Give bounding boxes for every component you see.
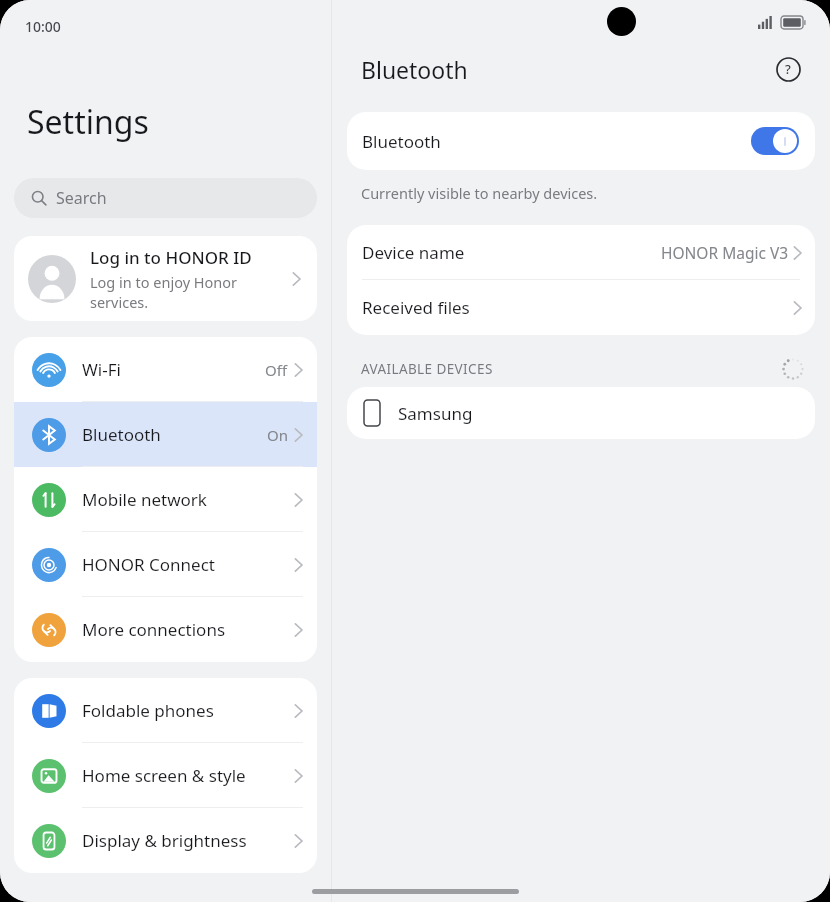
staticText: 10:00 [25, 17, 61, 36]
staticText: Currently visible to nearby devices. [361, 183, 598, 203]
staticText: Settings [27, 100, 149, 144]
staticText: Foldable phones [82, 699, 294, 722]
staticText: AVAILABLE DEVICES [361, 360, 493, 378]
staticText: Bluetooth [82, 423, 267, 446]
staticText: Home screen & style [82, 764, 294, 787]
staticText: Search [56, 187, 107, 209]
button[interactable]: Help [772, 53, 804, 85]
staticText: On [267, 425, 288, 445]
button[interactable]: Foldable phones [14, 678, 317, 743]
staticText: Off [265, 360, 288, 380]
staticText: Received files [362, 296, 793, 319]
staticText: Samsung [398, 402, 473, 425]
button[interactable]: Search [14, 178, 317, 218]
button[interactable]: Received files [347, 280, 815, 335]
staticText: Bluetooth [362, 130, 751, 153]
button[interactable]: Home screen & style [14, 743, 317, 808]
staticText: Log in to HONOR ID [90, 246, 252, 269]
staticText: Device name [362, 241, 661, 264]
button[interactable]: Display & brightness [14, 808, 317, 873]
staticText: Log in to enjoy Honor services. [90, 272, 264, 312]
button[interactable]: HONOR Connect [14, 532, 317, 597]
button[interactable]: Bluetooth [347, 112, 815, 170]
staticText: Mobile network [82, 488, 294, 511]
staticText: HONOR Connect [82, 553, 294, 576]
button[interactable]: Wi-Fi [14, 337, 317, 402]
button[interactable]: Mobile network [14, 467, 317, 532]
staticText: Display & brightness [82, 829, 294, 852]
button[interactable]: Samsung [347, 387, 815, 439]
button[interactable]: Log in to HONOR ID [14, 236, 317, 321]
staticText: ? [785, 60, 791, 78]
staticText: Bluetooth [361, 54, 468, 85]
button[interactable]: More connections [14, 597, 317, 662]
staticText: More connections [82, 618, 294, 641]
staticText: Wi-Fi [82, 358, 265, 381]
button[interactable]: Device name [347, 225, 815, 280]
button[interactable]: Bluetooth [14, 402, 317, 467]
staticText: HONOR Magic V3 [661, 242, 789, 263]
